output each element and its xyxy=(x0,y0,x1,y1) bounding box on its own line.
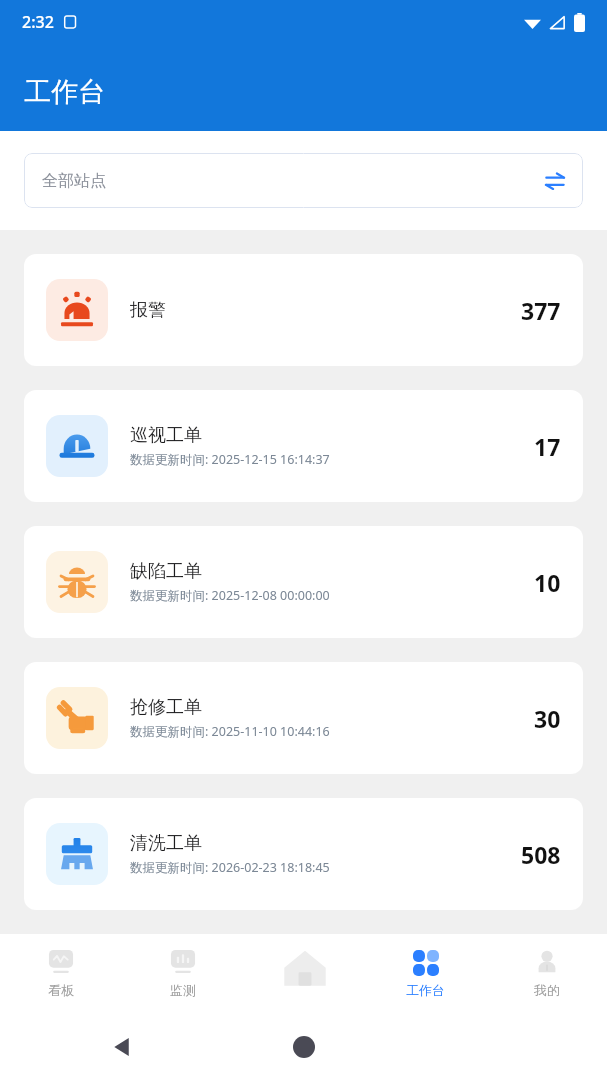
staticText: 30 xyxy=(534,703,561,734)
staticText: 抢修工单 xyxy=(130,696,202,719)
button[interactable]: 缺陷工单 xyxy=(24,526,583,638)
staticText: 报警 xyxy=(130,299,166,322)
staticText: 2:32 xyxy=(22,11,54,33)
button[interactable]: 监测 xyxy=(122,934,244,1014)
staticText: 工作台 xyxy=(24,75,105,109)
button[interactable]: 巡视工单 xyxy=(24,390,583,502)
staticText: 数据更新时间: 2025-12-08 00:00:00 xyxy=(130,587,330,604)
button[interactable]: 全部站点 xyxy=(24,153,583,208)
staticText: 全部站点 xyxy=(42,171,543,191)
other: Home xyxy=(293,1036,315,1058)
button[interactable]: 抢修工单 xyxy=(24,662,583,774)
staticText: 巡视工单 xyxy=(130,424,202,447)
staticText: 监测 xyxy=(170,982,196,998)
button[interactable]: 清洗工单 xyxy=(24,798,583,910)
staticText: 我的 xyxy=(534,982,560,998)
staticText: 数据更新时间: 2025-11-10 10:44:16 xyxy=(130,723,330,740)
staticText: 工作台 xyxy=(406,982,445,998)
other: Back xyxy=(110,1035,134,1059)
staticText: 377 xyxy=(521,295,561,326)
button[interactable]: 报警 xyxy=(24,254,583,366)
staticText: 10 xyxy=(534,567,561,598)
button[interactable]: 工作台 xyxy=(365,934,486,1014)
staticText: 看板 xyxy=(48,982,74,998)
staticText: 17 xyxy=(534,431,561,462)
button[interactable]: Home xyxy=(244,934,365,1014)
staticText: 数据更新时间: 2026-02-23 18:18:45 xyxy=(130,859,330,876)
staticText: 缺陷工单 xyxy=(130,560,202,583)
button[interactable]: 我的 xyxy=(486,934,607,1014)
other: Switch station xyxy=(543,169,567,193)
staticText: 清洗工单 xyxy=(130,832,202,855)
staticText: 数据更新时间: 2025-12-15 16:14:37 xyxy=(130,451,330,468)
button[interactable]: 看板 xyxy=(0,934,122,1014)
staticText: 508 xyxy=(521,839,561,870)
